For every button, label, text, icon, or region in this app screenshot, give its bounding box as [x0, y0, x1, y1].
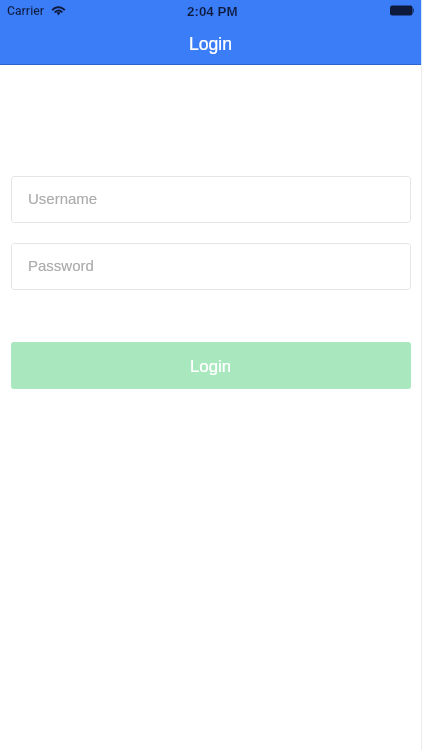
staticText: Username	[28, 190, 98, 207]
button[interactable]: Password	[11, 243, 411, 290]
other: Battery full	[390, 5, 414, 16]
button[interactable]: Login	[11, 342, 411, 389]
staticText: Carrier	[7, 4, 45, 18]
staticText: Login	[190, 357, 232, 376]
other: Wi-Fi signal	[52, 5, 65, 15]
button[interactable]: Username	[11, 176, 411, 223]
staticText: 2:04 PM	[187, 4, 238, 19]
staticText: Password	[28, 257, 94, 274]
staticText: Login	[189, 34, 233, 54]
